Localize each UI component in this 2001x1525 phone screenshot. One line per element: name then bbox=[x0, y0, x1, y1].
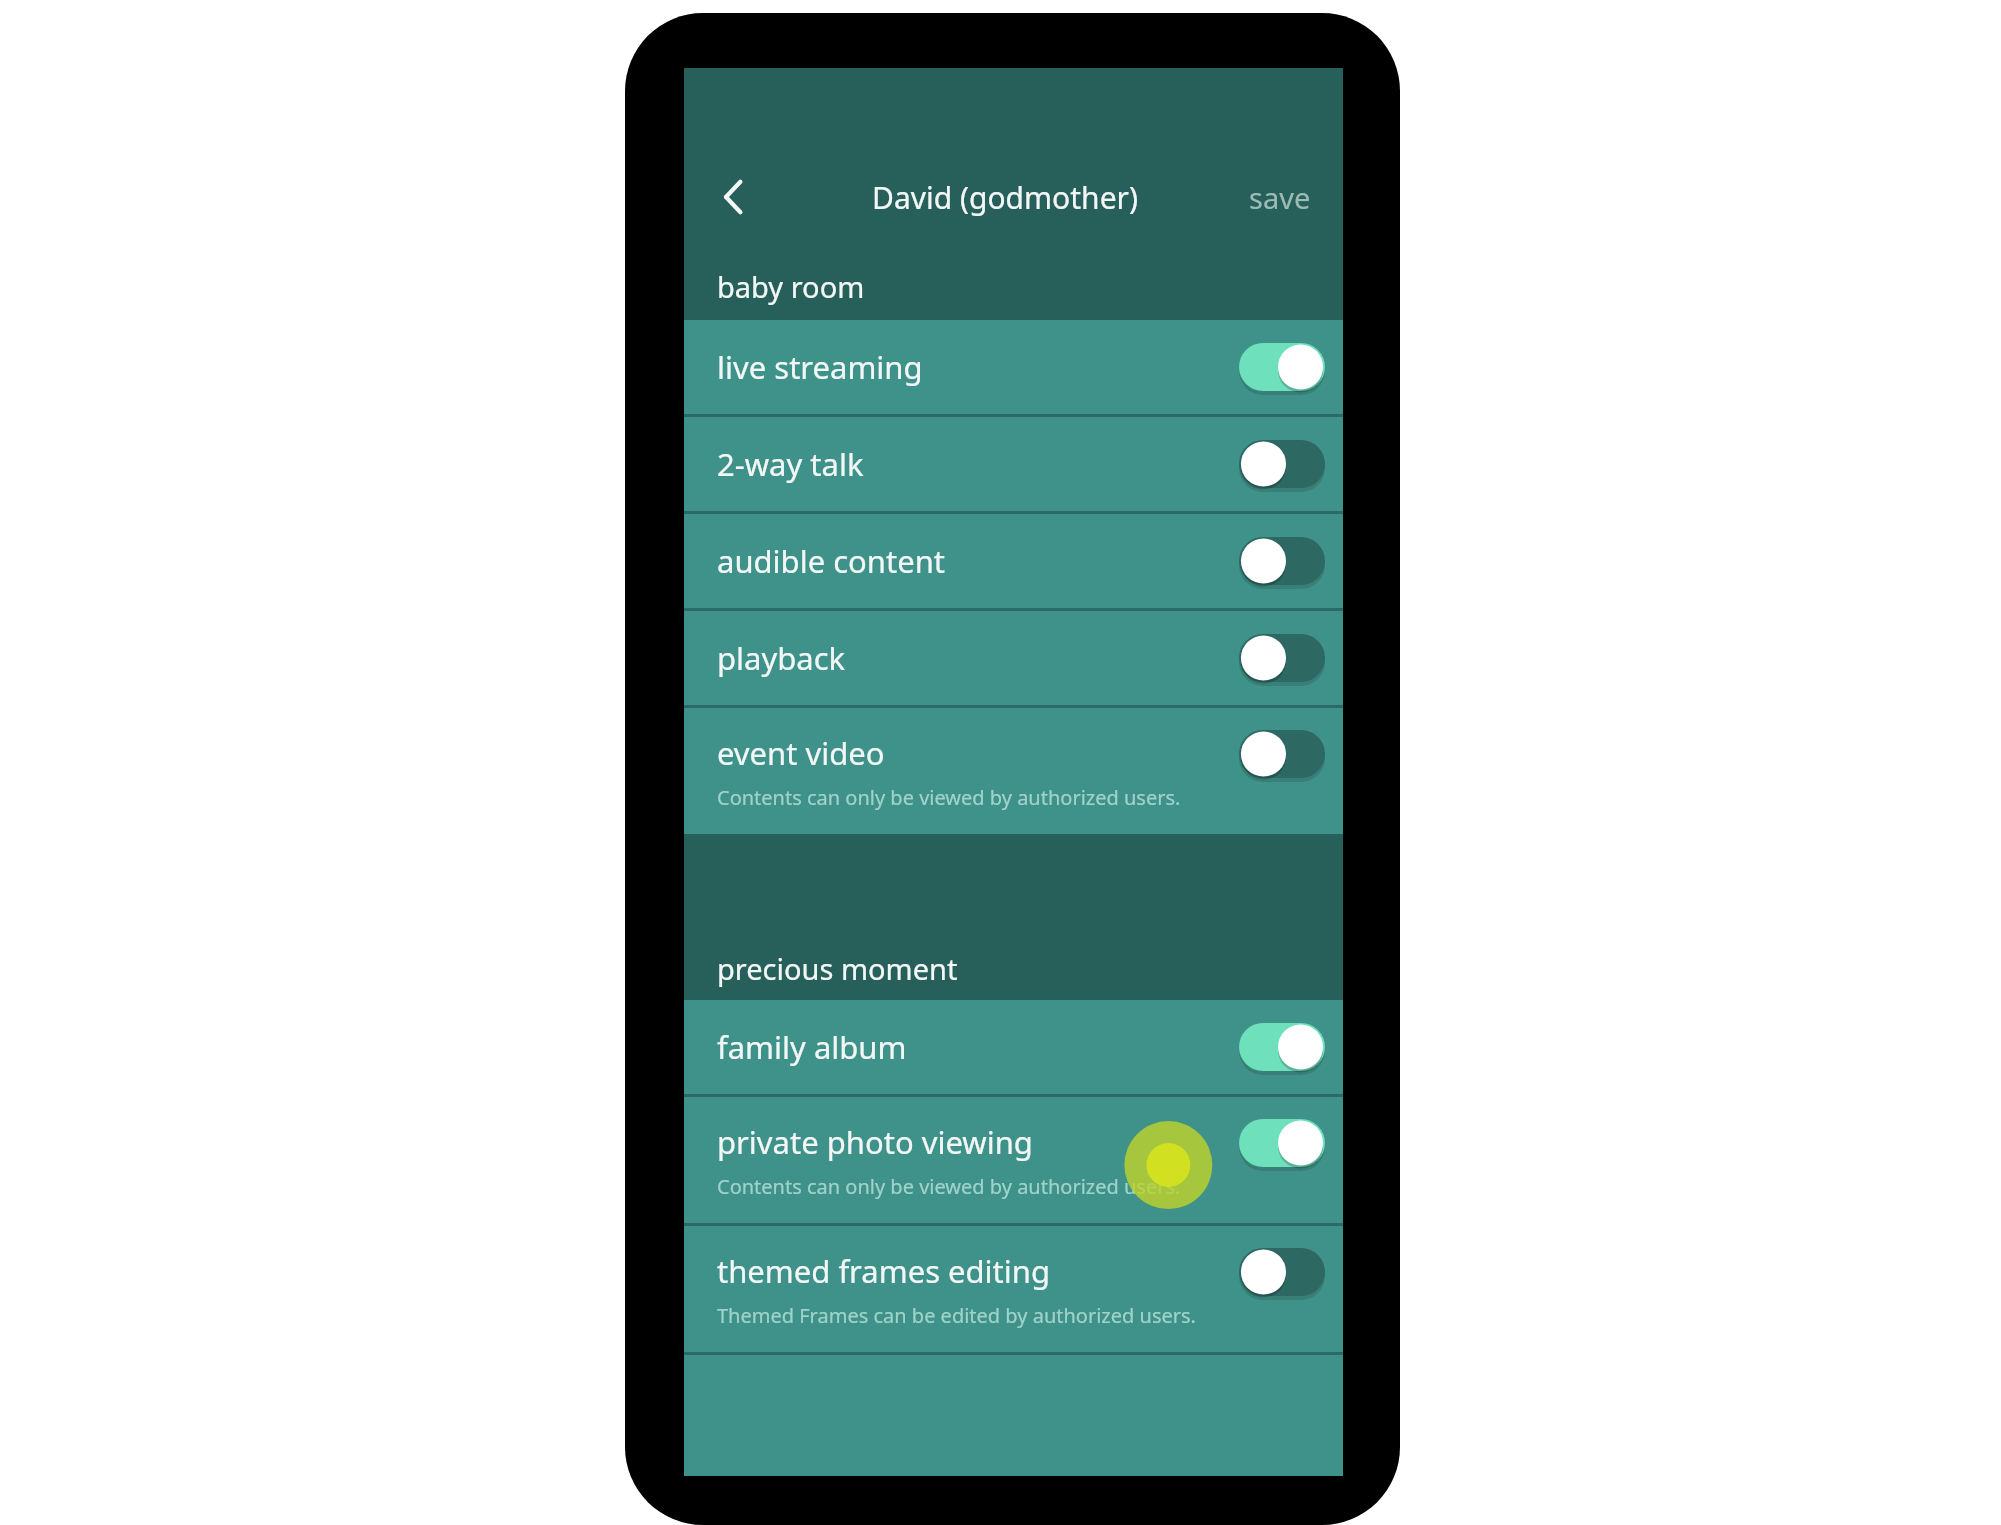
staticText: David (godmother) bbox=[872, 177, 1138, 218]
button[interactable]: playback bbox=[684, 611, 1343, 705]
button[interactable]: save bbox=[1235, 166, 1325, 229]
staticText: family album bbox=[717, 1026, 907, 1068]
staticText: save bbox=[1249, 178, 1311, 217]
button[interactable]: Off bbox=[1239, 440, 1325, 488]
staticText: Themed Frames can be edited by authorize… bbox=[717, 1302, 1196, 1329]
button[interactable]: private photo viewing bbox=[684, 1097, 1343, 1223]
button[interactable]: Off bbox=[1239, 634, 1325, 682]
button[interactable]: On bbox=[1239, 1023, 1325, 1071]
button[interactable]: On bbox=[1239, 343, 1325, 391]
staticText: themed frames editing bbox=[717, 1250, 1051, 1292]
button[interactable]: event video bbox=[684, 708, 1343, 834]
button[interactable]: themed frames editing bbox=[684, 1226, 1343, 1352]
button[interactable]: Off bbox=[1239, 537, 1325, 585]
staticText: baby room bbox=[717, 267, 865, 306]
button[interactable]: Off bbox=[1239, 730, 1325, 778]
button[interactable]: On bbox=[1239, 1119, 1325, 1167]
staticText: Contents can only be viewed by authorize… bbox=[717, 1173, 1181, 1200]
button[interactable]: Back bbox=[694, 157, 774, 237]
staticText: live streaming bbox=[717, 346, 923, 388]
staticText: event video bbox=[717, 732, 885, 774]
button[interactable]: Off bbox=[1239, 1248, 1325, 1296]
button[interactable]: live streaming bbox=[684, 320, 1343, 414]
staticText: private photo viewing bbox=[717, 1121, 1033, 1163]
button[interactable]: 2-way talk bbox=[684, 417, 1343, 511]
staticText: audible content bbox=[717, 540, 946, 582]
button[interactable]: family album bbox=[684, 1000, 1343, 1094]
button[interactable]: audible content bbox=[684, 514, 1343, 608]
staticText: Contents can only be viewed by authorize… bbox=[717, 784, 1181, 811]
staticText: 2-way talk bbox=[717, 443, 864, 485]
staticText: playback bbox=[717, 637, 846, 679]
staticText: precious moment bbox=[717, 949, 958, 988]
